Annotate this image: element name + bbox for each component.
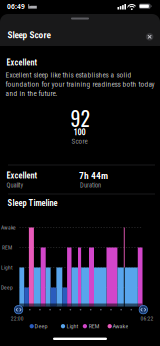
button[interactable]: Close: [146, 33, 153, 40]
staticText: and in the future.: [5, 89, 57, 98]
staticText: 22:00: [11, 315, 24, 322]
staticText: Light: [67, 323, 79, 330]
staticText: Score: [72, 137, 88, 146]
staticText: foundation for your training readiness b…: [5, 80, 154, 89]
staticText: Awake: [1, 224, 16, 231]
staticText: 100: [74, 128, 86, 137]
staticText: Excellent sleep like this establishes a …: [5, 71, 131, 79]
staticText: Deep: [1, 284, 13, 291]
staticText: Sleep Score: [7, 29, 50, 40]
staticText: Duration: [80, 181, 101, 189]
staticText: Excellent: [6, 58, 37, 67]
staticText: REM: [2, 244, 12, 251]
staticText: Quality: [6, 181, 23, 189]
staticText: Excellent: [6, 171, 37, 180]
staticText: Light: [1, 264, 13, 271]
staticText: 06:22: [140, 315, 153, 322]
staticText: Deep: [34, 323, 47, 330]
staticText: 06:49: [7, 2, 25, 11]
staticText: Awake: [112, 323, 128, 330]
staticText: Sleep Timeline: [7, 198, 57, 208]
staticText: REM: [89, 323, 100, 330]
staticText: 7h 44m: [79, 170, 108, 181]
staticText: 92: [70, 103, 89, 133]
